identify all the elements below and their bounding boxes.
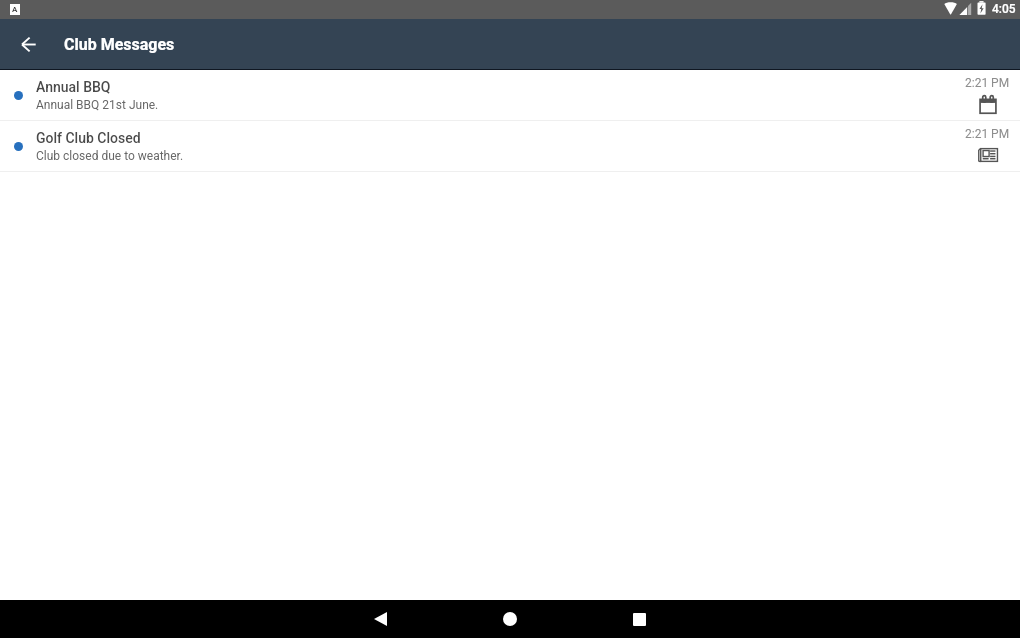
staticText: Annual BBQ — [36, 79, 111, 95]
staticText: A — [12, 5, 18, 14]
button[interactable]: Navigate up — [4, 20, 52, 68]
staticText: Golf Club Closed — [36, 130, 141, 146]
button[interactable]: Annual BBQ — [0, 70, 1020, 120]
staticText: Club closed due to weather. — [36, 149, 184, 163]
staticText: 2:21 PM — [965, 76, 1010, 90]
button[interactable]: Recent apps — [574, 600, 703, 638]
button[interactable]: Back — [316, 600, 445, 638]
button[interactable]: Golf Club Closed — [0, 121, 1020, 171]
button[interactable]: Home — [445, 600, 574, 638]
staticText: Annual BBQ 21st June. — [36, 98, 159, 112]
staticText: 4:05 — [992, 2, 1016, 16]
staticText: Club Messages — [64, 35, 175, 54]
staticText: 2:21 PM — [965, 127, 1010, 141]
